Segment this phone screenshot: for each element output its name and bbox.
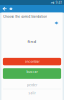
staticText: perder: [27, 83, 37, 87]
staticText: encontrar: [24, 59, 39, 64]
staticText: buscar: [26, 70, 37, 74]
button[interactable]: Back: [3, 7, 7, 11]
staticText: find: [27, 38, 36, 44]
button[interactable]: salir: [3, 89, 61, 97]
staticText: Choose the correct translation: [3, 14, 47, 19]
button[interactable]: Lesson: [9, 7, 13, 10]
button[interactable]: buscar: [3, 68, 61, 79]
staticText: ▰▮: [51, 1, 55, 4]
staticText: salir: [28, 91, 35, 95]
button[interactable]: perder: [3, 81, 61, 89]
staticText: 9:41: [55, 0, 62, 5]
button[interactable]: encontrar: [3, 58, 61, 65]
button[interactable]: Play pronunciation: [55, 21, 58, 25]
